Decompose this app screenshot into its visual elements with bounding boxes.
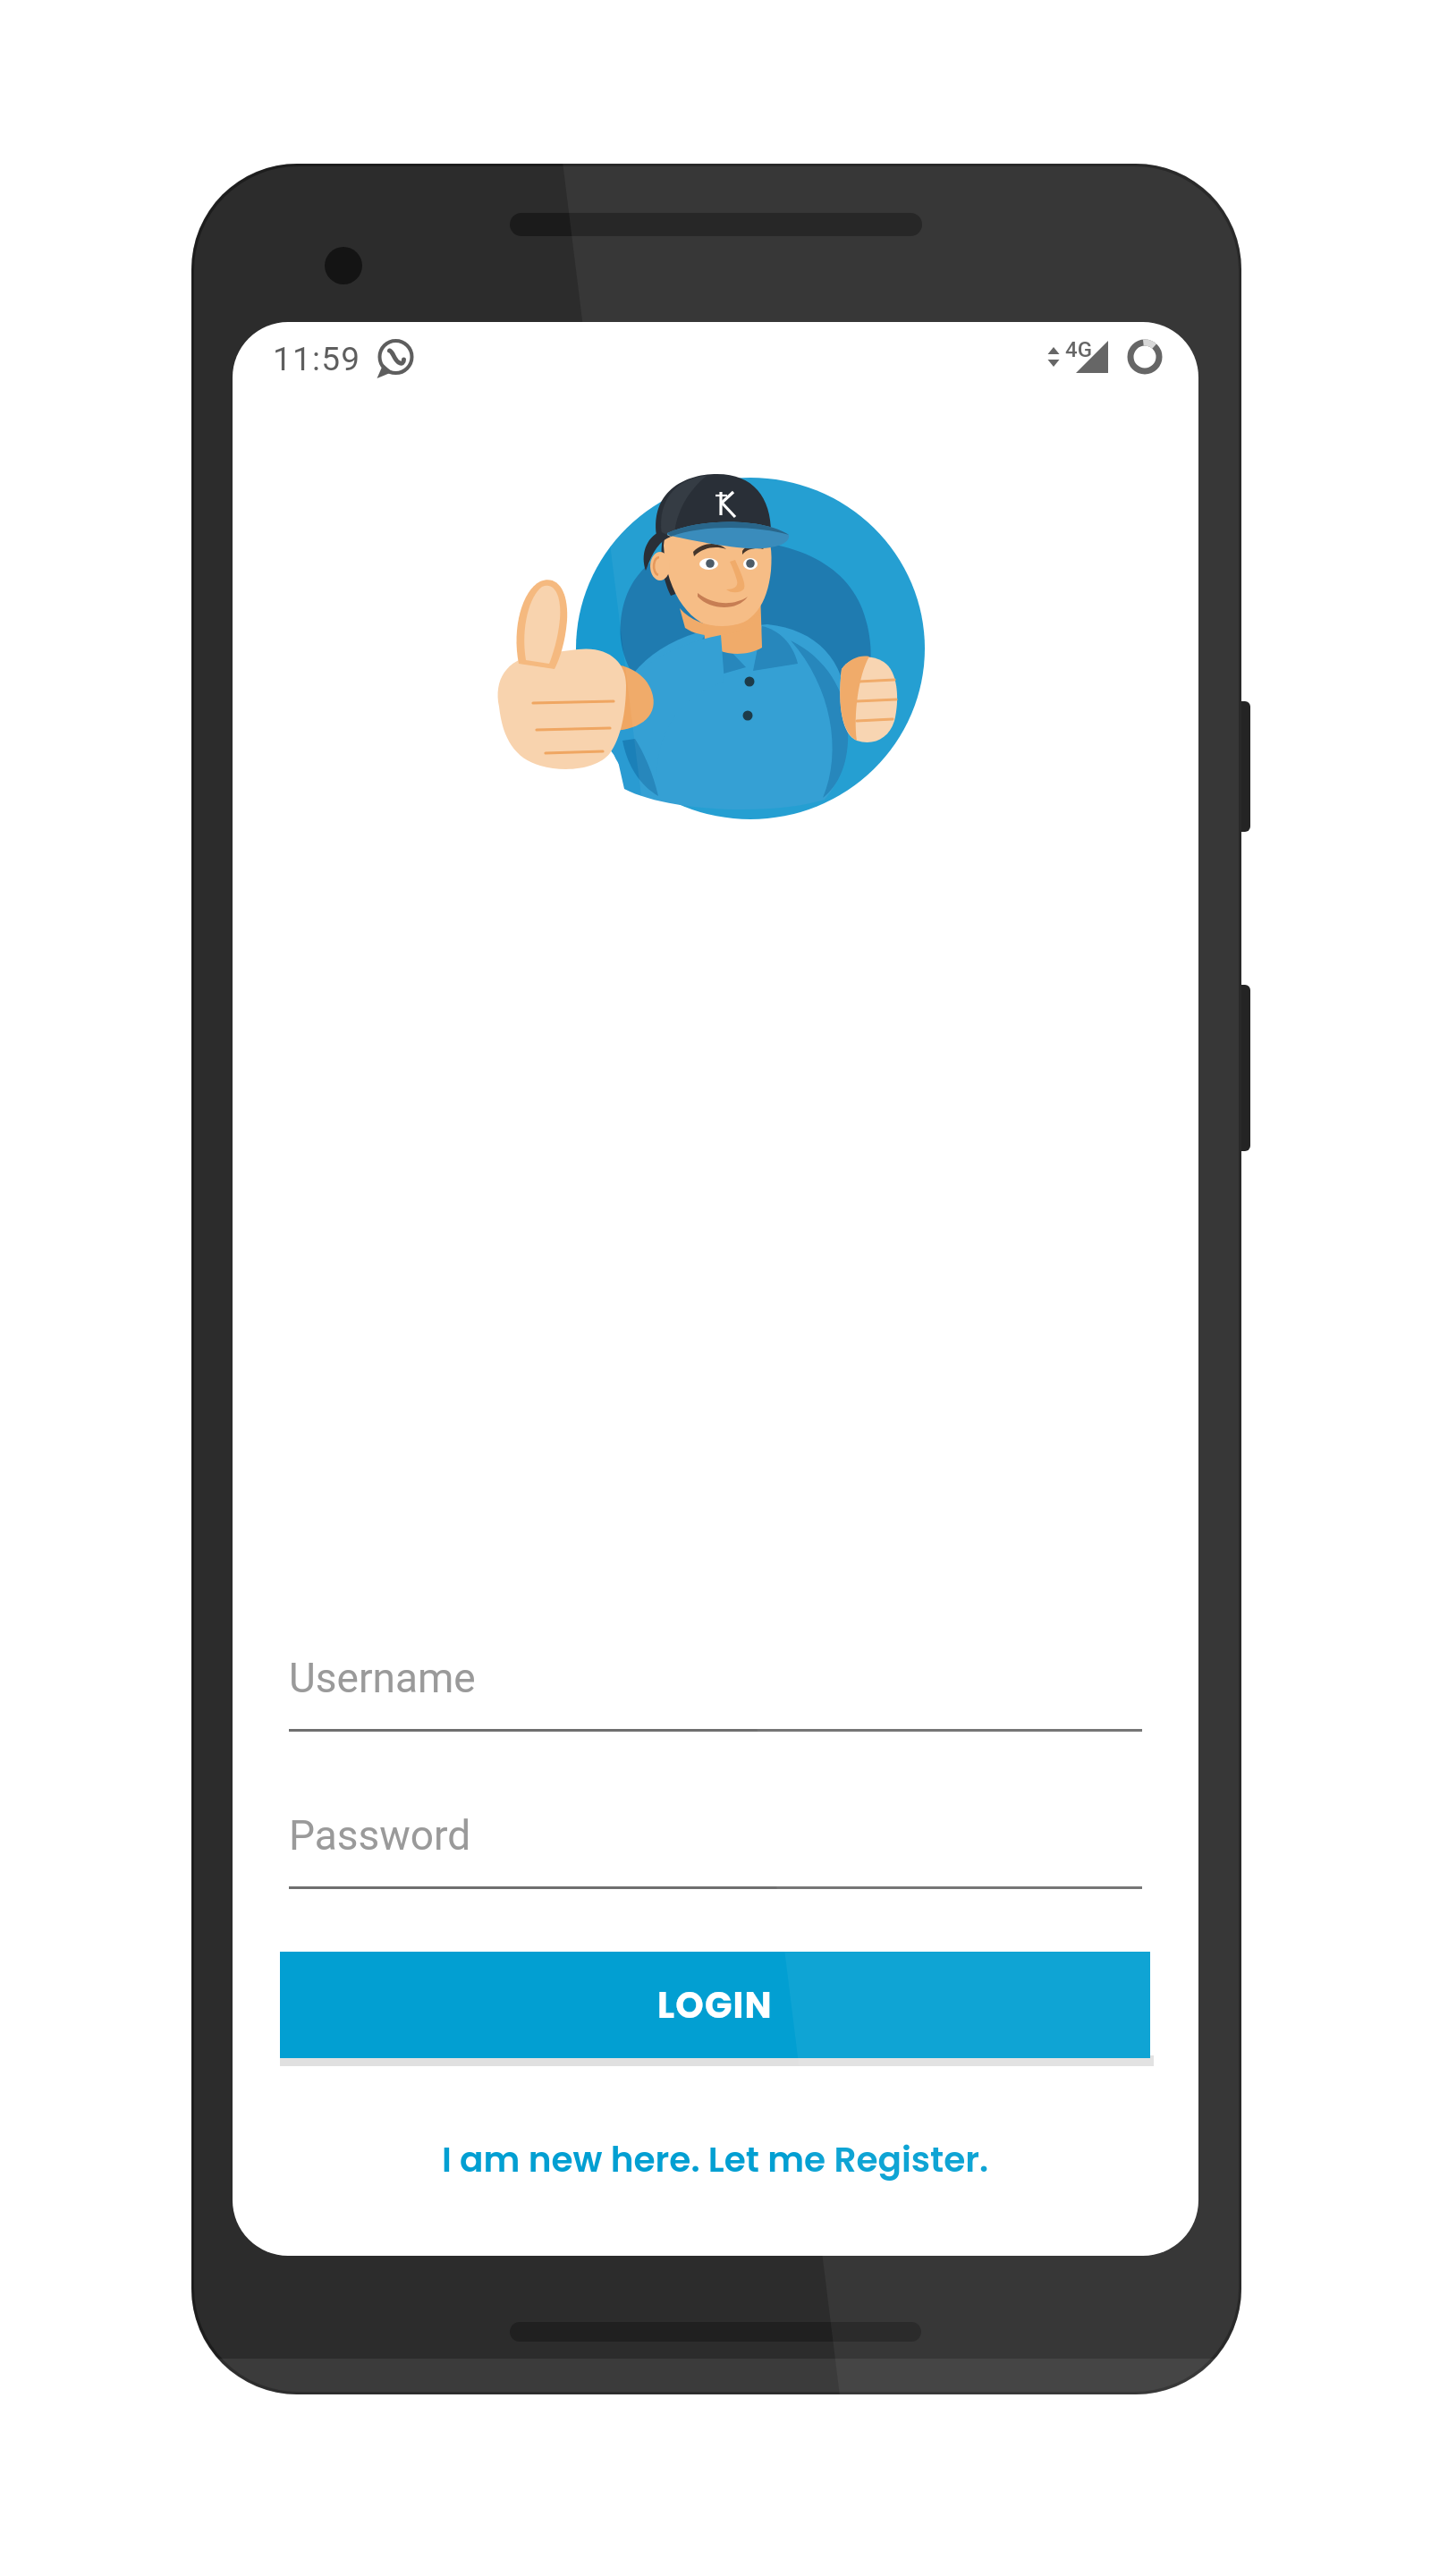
staticText: I am new here. Let me Register.	[442, 2135, 989, 2184]
button[interactable]: I am new here. Let me Register.	[420, 2131, 1011, 2187]
button[interactable]: Password	[289, 1811, 1142, 1889]
staticText: Password	[289, 1811, 471, 1860]
staticText: LOGIN	[657, 1980, 773, 2030]
staticText: Username	[289, 1654, 476, 1702]
button[interactable]: LOGIN	[280, 1952, 1150, 2058]
button[interactable]: Username	[289, 1654, 1142, 1732]
